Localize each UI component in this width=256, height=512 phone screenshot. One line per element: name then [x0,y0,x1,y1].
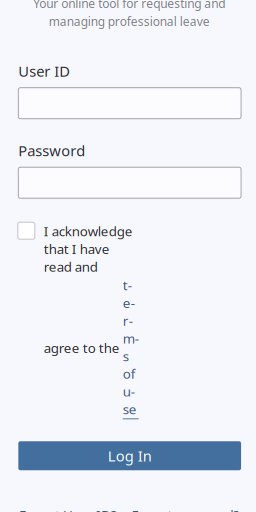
button[interactable]: Forgot User ID? [19,506,117,512]
button[interactable]: Log In [18,441,241,470]
staticText: Forgot User ID? [19,506,117,512]
staticText: managing professional leave [49,13,210,29]
button[interactable]: Forgot password? [131,506,239,512]
staticText: User ID [18,61,70,81]
staticText: Your online tool for requesting and [33,0,225,11]
staticText: terms of use [123,276,139,418]
staticText: agree to the [44,339,123,357]
button[interactable]: terms of use [123,276,139,419]
staticText: Password [18,141,85,160]
button[interactable]: Acknowledge terms of use [18,222,35,239]
staticText: Log In [108,446,152,465]
staticText: Forgot password? [131,506,239,512]
staticText: I acknowledge that I have read and [44,222,133,275]
